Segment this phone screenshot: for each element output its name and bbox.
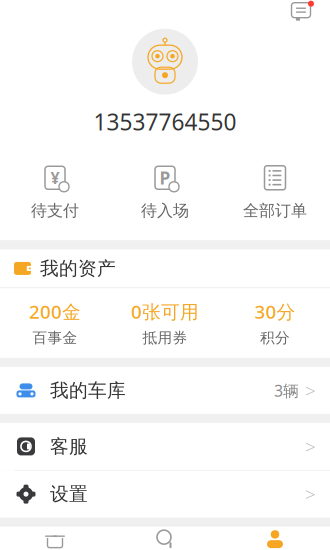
staticText: 积分 bbox=[260, 329, 290, 347]
button[interactable]: 30分 bbox=[220, 299, 330, 347]
button[interactable]: 200金 bbox=[0, 299, 110, 347]
button[interactable]: 全部订单 bbox=[220, 159, 330, 224]
staticText: > bbox=[305, 434, 316, 459]
staticText: 全部订单 bbox=[243, 201, 307, 220]
staticText: > bbox=[305, 378, 316, 403]
button[interactable]: 首页 bbox=[0, 526, 110, 550]
staticText: 待入场 bbox=[141, 201, 189, 220]
staticText: 客服 bbox=[50, 435, 88, 458]
staticText: 30分 bbox=[254, 299, 295, 324]
staticText: 我的资产 bbox=[40, 257, 116, 280]
button[interactable]: 找车位 bbox=[110, 526, 220, 550]
staticText: 百事金 bbox=[32, 329, 77, 347]
staticText: 待支付 bbox=[31, 201, 79, 220]
staticText: P bbox=[159, 166, 170, 189]
staticText: 0张可用 bbox=[131, 299, 199, 324]
staticText: 3辆 bbox=[274, 380, 299, 401]
button[interactable]: 设置 bbox=[0, 471, 330, 518]
staticText: ¥ bbox=[50, 167, 59, 188]
staticText: 设置 bbox=[50, 483, 88, 506]
staticText: > bbox=[305, 482, 316, 506]
button[interactable]: 客服 bbox=[0, 423, 330, 470]
button[interactable]: P bbox=[110, 159, 220, 224]
staticText: 我的车库 bbox=[50, 379, 126, 402]
button[interactable]: 我的车库 bbox=[0, 367, 330, 414]
staticText: 200金 bbox=[29, 299, 81, 324]
button[interactable]: 我的 bbox=[220, 526, 330, 550]
button[interactable]: Messages bbox=[280, 0, 322, 25]
button[interactable]: ¥ bbox=[0, 159, 110, 224]
staticText: 抵用券 bbox=[142, 329, 187, 347]
staticText: 13537764550 bbox=[93, 107, 236, 137]
button[interactable]: 0张可用 bbox=[110, 299, 220, 347]
